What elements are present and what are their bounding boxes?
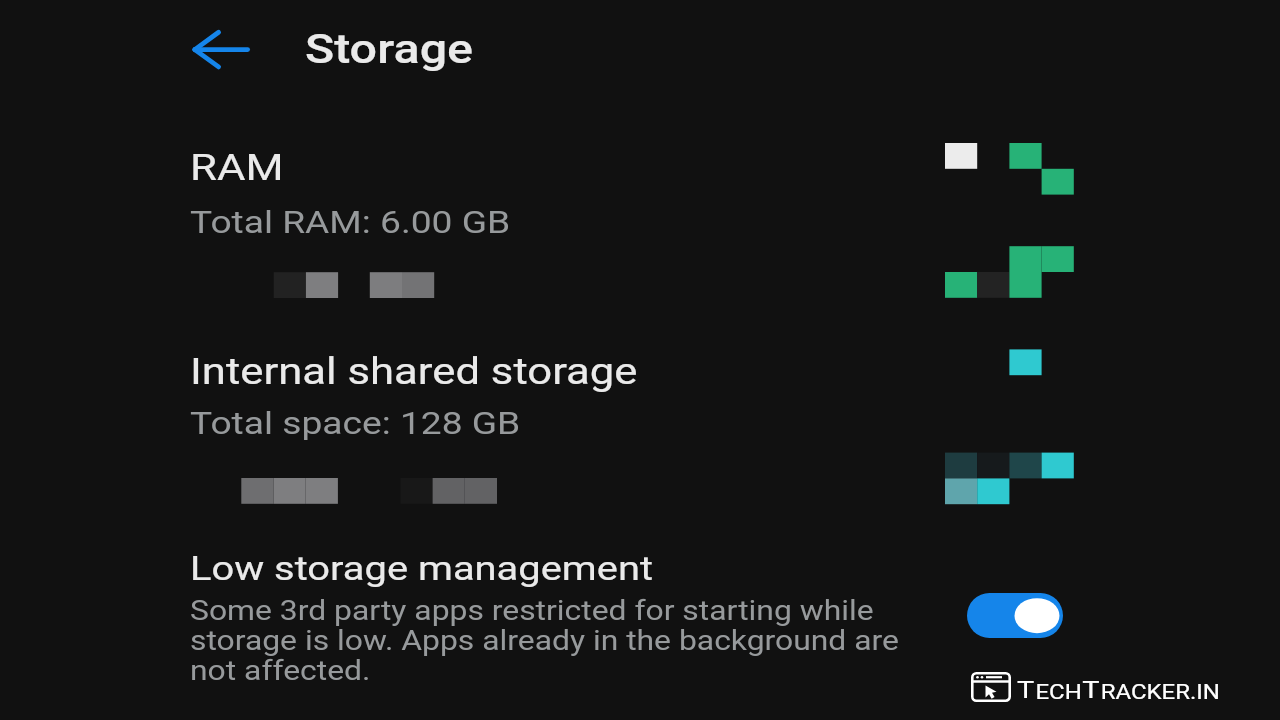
button[interactable] [150, 334, 930, 524]
staticText: Low storage management [190, 549, 654, 589]
staticText: Total RAM: 6.00 GB [190, 204, 511, 241]
staticText: T [1017, 676, 1035, 704]
button[interactable] [150, 130, 930, 320]
staticText: RAM [190, 146, 284, 189]
staticText: RACKER.IN [1101, 681, 1221, 704]
staticText: T [1082, 676, 1101, 704]
staticText: Internal shared storage [190, 350, 638, 393]
staticText: Storage [305, 25, 474, 73]
button[interactable]: Back [174, 14, 262, 86]
staticText: ECH [1035, 681, 1082, 704]
button[interactable]: Low storage management, on [967, 593, 1063, 638]
staticText: Total space: 128 GB [190, 405, 520, 442]
staticText: Some 3rd party apps restricted for start… [190, 595, 927, 687]
